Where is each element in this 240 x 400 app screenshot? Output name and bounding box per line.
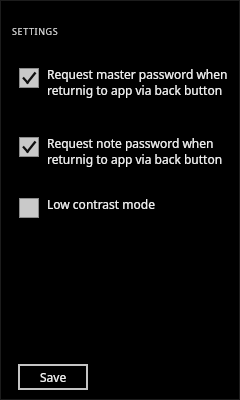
staticText: Request master password when returnig to… <box>47 66 228 98</box>
other: Low contrast mode <box>19 198 39 218</box>
other: Request note password when <box>19 137 39 157</box>
button[interactable]: Save <box>18 364 88 390</box>
button[interactable]: Request master password when <box>19 68 228 100</box>
staticText: Request note password when returnig to a… <box>47 135 223 167</box>
staticText: Save <box>40 369 67 385</box>
staticText: Low contrast mode <box>47 196 155 212</box>
staticText: SETTINGS <box>12 25 59 37</box>
button[interactable]: Low contrast mode <box>19 198 155 218</box>
button[interactable]: Request note password when <box>19 137 223 169</box>
other: Request master password when <box>19 68 39 88</box>
